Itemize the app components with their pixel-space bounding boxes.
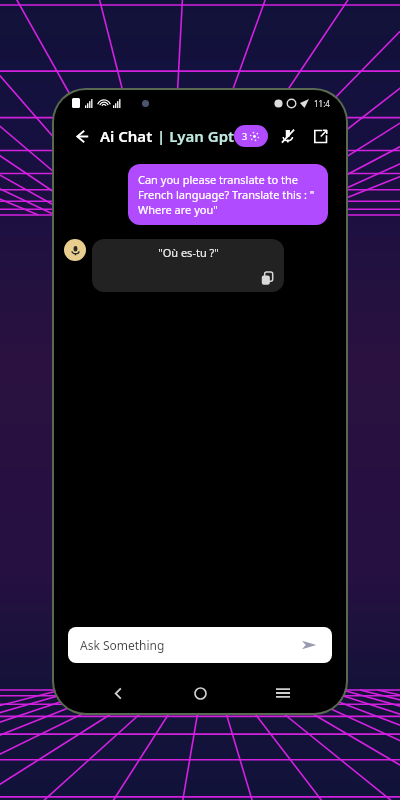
button[interactable]: Send — [298, 634, 320, 656]
staticText: Ask Something — [80, 637, 298, 653]
button[interactable]: Back — [64, 119, 98, 153]
button[interactable]: Mute — [272, 120, 304, 152]
staticText: | Lyan Gpt C — [157, 126, 248, 146]
staticText: "Où es-tu ?" — [158, 245, 219, 260]
button[interactable]: Open in new — [304, 120, 336, 152]
staticText: Ai Chat — [100, 126, 157, 146]
staticText: Can you please translate to the French l… — [138, 172, 318, 217]
button[interactable]: 3 — [234, 125, 268, 147]
button[interactable]: Can you please translate to the French l… — [128, 164, 328, 225]
staticText: 11:4 — [314, 98, 330, 109]
button[interactable]: Copy — [258, 269, 276, 287]
staticText: 3 — [242, 130, 248, 142]
button[interactable]: Ask Something — [68, 627, 332, 663]
button[interactable]: Back — [99, 674, 137, 712]
button[interactable]: "Où es-tu ?" — [92, 239, 284, 292]
button[interactable]: Recents — [264, 674, 302, 712]
button[interactable]: Home — [181, 674, 219, 712]
